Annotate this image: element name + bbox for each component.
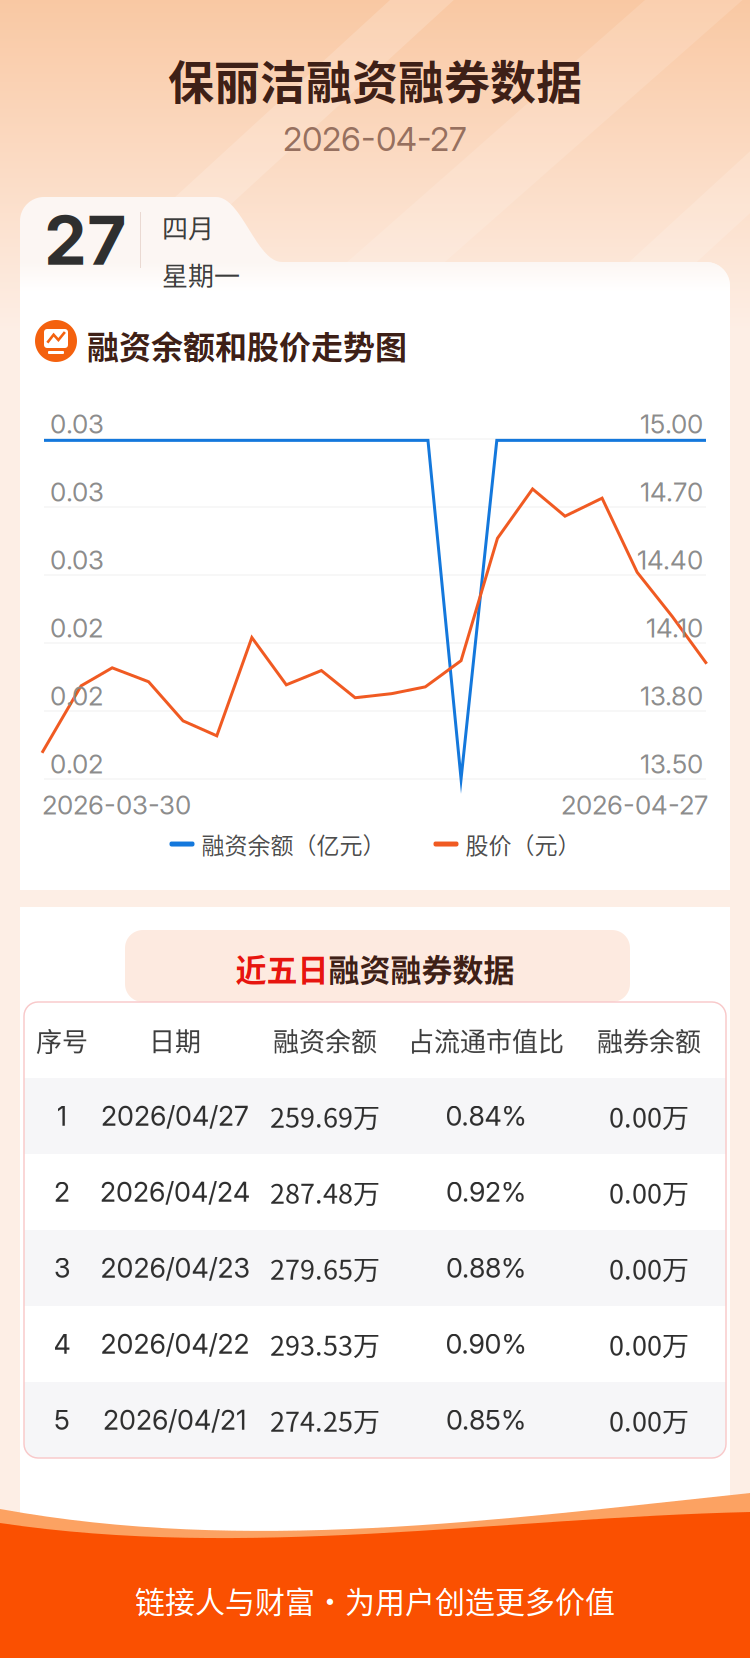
staticText: 融资余额 [273, 1021, 377, 1059]
staticText: 287.48万 [270, 1172, 380, 1212]
staticText: 0.03 [50, 408, 104, 440]
staticText: 2026-04-27 [561, 789, 708, 821]
staticText: 5 [54, 1404, 70, 1436]
staticText: 13.80 [640, 680, 703, 712]
staticText: 融资余额和股价走势图 [87, 322, 407, 368]
staticText: 13.50 [640, 748, 703, 780]
staticText: 27 [44, 199, 127, 281]
staticText: 0.00万 [609, 1400, 689, 1440]
staticText: 14.40 [637, 544, 703, 576]
staticText: 259.69万 [270, 1096, 380, 1136]
staticText: 链接人与财富·为用户创造更多价值 [135, 1578, 615, 1622]
staticText: 近五日 [235, 946, 328, 990]
staticText: 2 [54, 1176, 70, 1208]
staticText: 2026/04/22 [100, 1328, 249, 1360]
staticText: 0.88% [446, 1252, 526, 1284]
staticText: 2026/04/21 [103, 1404, 247, 1436]
staticText: 0.90% [445, 1328, 526, 1360]
staticText: 3 [54, 1252, 70, 1284]
staticText: 14.70 [640, 476, 703, 508]
staticText: 2026-03-30 [42, 789, 191, 821]
staticText: 0.92% [446, 1176, 526, 1208]
staticText: 0.02 [50, 612, 103, 644]
staticText: 274.25万 [270, 1400, 380, 1440]
staticText: 0.00万 [609, 1248, 689, 1288]
staticText: 股价（元） [465, 827, 580, 861]
staticText: 4 [53, 1328, 70, 1360]
staticText: 四月 [162, 208, 214, 246]
staticText: 2026/04/23 [100, 1252, 249, 1284]
staticText: 0.00万 [609, 1324, 689, 1364]
staticText: 星期一 [162, 256, 240, 293]
staticText: 占流通市值比 [408, 1021, 564, 1059]
staticText: 0.03 [50, 544, 104, 576]
staticText: 日期 [149, 1021, 201, 1059]
staticText: 14.10 [646, 612, 703, 644]
staticText: 融资余额（亿元） [201, 827, 385, 861]
staticText: 2026-04-27 [283, 119, 467, 159]
staticText: 0.84% [445, 1100, 526, 1132]
staticText: 序号 [36, 1021, 88, 1059]
staticText: 0.02 [50, 680, 103, 712]
staticText: 293.53万 [270, 1324, 380, 1364]
staticText: 15.00 [640, 408, 703, 440]
staticText: 1 [56, 1100, 67, 1132]
staticText: 融券余额 [597, 1021, 701, 1059]
staticText: 保丽洁融资融券数据 [168, 46, 582, 112]
staticText: 2026/04/24 [100, 1176, 250, 1208]
staticText: 2026/04/27 [101, 1100, 249, 1132]
staticText: 0.00万 [609, 1096, 689, 1136]
staticText: 0.00万 [609, 1172, 689, 1212]
staticText: 0.02 [50, 748, 103, 780]
staticText: 0.03 [50, 476, 104, 508]
staticText: 0.85% [446, 1404, 526, 1436]
staticText: 279.65万 [270, 1248, 380, 1288]
staticText: 融资融券数据 [328, 946, 514, 990]
